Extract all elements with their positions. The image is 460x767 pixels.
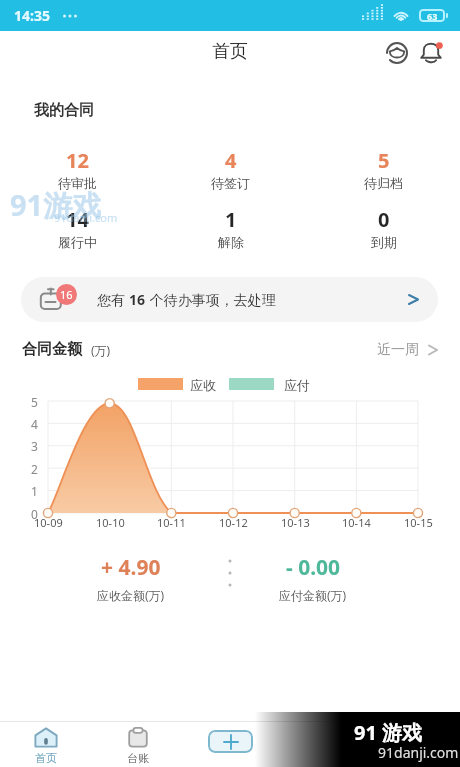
button[interactable]: 1: [154, 206, 307, 250]
staticText: 1: [31, 483, 38, 499]
staticText: 台账: [127, 751, 149, 765]
button[interactable]: 12: [0, 147, 154, 191]
button[interactable]: 14: [0, 206, 154, 250]
staticText: 合同金额: [22, 340, 82, 359]
staticText: 91danji.com: [54, 210, 118, 225]
staticText: 10-09: [34, 515, 63, 530]
staticText: 履行中: [58, 234, 97, 250]
button[interactable]: Notifications: [417, 39, 445, 67]
staticText: 10-10: [96, 515, 125, 530]
staticText: 5: [378, 147, 390, 174]
staticText: 10-11: [157, 515, 186, 530]
staticText: 解除: [218, 234, 244, 250]
staticText: + 4.90: [101, 553, 161, 582]
staticText: 应收金额(万): [97, 587, 165, 603]
staticText: 16: [129, 290, 146, 309]
staticText: 0: [31, 506, 38, 522]
staticText: 待审批: [58, 175, 97, 191]
staticText: 应付: [284, 377, 310, 393]
staticText: 应收: [190, 377, 216, 393]
staticText: 待签订: [211, 175, 250, 191]
staticText: 91游戏: [10, 185, 102, 225]
staticText: 14:35: [14, 6, 50, 25]
staticText: 16: [60, 287, 73, 302]
staticText: 4: [31, 416, 38, 432]
staticText: (万): [91, 342, 111, 358]
staticText: 12: [66, 147, 89, 174]
staticText: 应付金额(万): [279, 587, 347, 603]
staticText: 个待办事项，去处理: [146, 290, 276, 309]
staticText: 10-13: [281, 515, 310, 530]
staticText: 91 游戏: [354, 719, 423, 746]
staticText: 0: [378, 206, 390, 233]
staticText: 首页: [212, 40, 248, 63]
staticText: 14: [66, 206, 89, 233]
staticText: 91danji.com: [378, 743, 459, 762]
staticText: 近一周: [377, 341, 419, 359]
button[interactable]: 16: [21, 277, 438, 322]
staticText: 2: [31, 461, 38, 477]
staticText: 4: [225, 147, 237, 174]
staticText: 10-12: [219, 515, 248, 530]
staticText: - 0.00: [286, 553, 341, 582]
staticText: 1: [225, 206, 237, 233]
staticText: 3: [31, 438, 38, 454]
staticText: 待归档: [364, 175, 403, 191]
button[interactable]: 4: [154, 147, 307, 191]
staticText: 5: [31, 394, 38, 410]
staticText: 我的合同: [34, 101, 94, 120]
button[interactable]: Customer service: [383, 39, 411, 67]
staticText: 您有: [97, 290, 129, 309]
staticText: 到期: [371, 234, 397, 250]
staticText: 10-14: [342, 515, 371, 530]
button[interactable]: 台账: [108, 727, 168, 765]
staticText: 63: [427, 10, 438, 22]
staticText: 10-15: [404, 515, 433, 530]
button[interactable]: 首页: [16, 727, 76, 765]
staticText: 首页: [35, 751, 57, 765]
button[interactable]: 近一周: [377, 341, 439, 359]
button[interactable]: Add: [208, 730, 253, 753]
button[interactable]: 0: [307, 206, 460, 250]
button[interactable]: 5: [307, 147, 460, 191]
